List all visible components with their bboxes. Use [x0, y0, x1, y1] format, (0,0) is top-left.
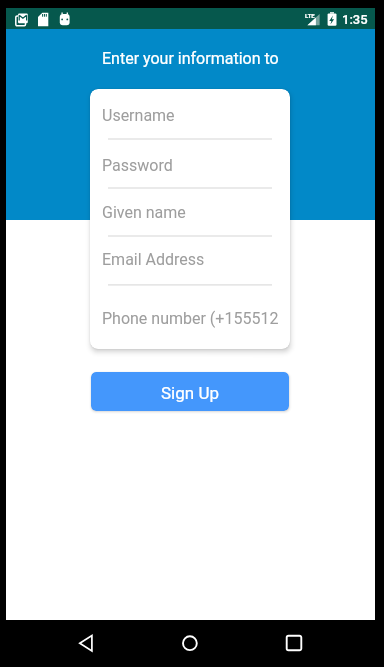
button[interactable]: [277, 626, 311, 660]
staticText: Enter your information to: [102, 49, 279, 68]
staticText: 1:35: [342, 12, 368, 27]
staticText: Username: [102, 106, 175, 125]
button[interactable]: Given name: [90, 193, 290, 235]
staticText: Email Address: [102, 250, 205, 269]
staticText: Phone number (+155512: [102, 309, 279, 328]
staticText: Sign Up: [161, 383, 219, 403]
button[interactable]: Username: [90, 96, 290, 138]
button[interactable]: Password: [90, 146, 290, 188]
staticText: Given name: [102, 203, 186, 222]
staticText: LTE: [305, 12, 315, 19]
button[interactable]: Sign Up: [91, 372, 289, 411]
button[interactable]: Phone number (+155512: [90, 299, 290, 341]
button[interactable]: [68, 626, 102, 660]
staticText: Password: [102, 156, 173, 175]
button[interactable]: Email Address: [90, 240, 290, 282]
button[interactable]: [173, 626, 207, 660]
